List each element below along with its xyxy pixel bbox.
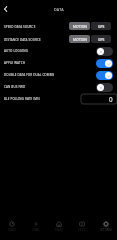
- staticText: DRAG: [32, 228, 40, 232]
- button[interactable]: TRACK: [47, 215, 70, 240]
- staticText: 0: [109, 95, 113, 104]
- button[interactable]: Enabled: [96, 59, 113, 68]
- staticText: CAN BUS FWD: [4, 85, 96, 89]
- button[interactable]: SETTINGS: [94, 215, 117, 240]
- button[interactable]: VIDEO: [70, 215, 93, 240]
- staticText: DIALS: [8, 228, 16, 232]
- button[interactable]: Disabled: [96, 83, 113, 92]
- button[interactable]: SPEED DATA SOURCE: [0, 21, 117, 33]
- button[interactable]: Back: [0, 3, 12, 15]
- staticText: SETTINGS: [100, 228, 112, 232]
- button[interactable]: GPS: [91, 22, 111, 30]
- button[interactable]: DRAG: [24, 215, 47, 240]
- staticText: MOTION: [73, 24, 87, 28]
- button[interactable]: Disabled: [96, 47, 113, 56]
- staticText: AUTO LOGGING: [4, 49, 96, 53]
- button[interactable]: DISTANCE DATA SOURCE: [0, 34, 117, 46]
- staticText: VIDEO: [78, 228, 86, 232]
- staticText: MOTION: [73, 37, 87, 41]
- staticText: SPEED DATA SOURCE: [4, 25, 69, 29]
- button[interactable]: GPS: [91, 35, 111, 43]
- staticText: GPS: [98, 37, 105, 41]
- staticText: DISTANCE DATA SOURCE: [4, 38, 69, 42]
- button[interactable]: BLE POLLING RATE (MS): [0, 93, 117, 105]
- staticText: TRACK: [55, 228, 63, 232]
- staticText: GPS: [98, 24, 105, 28]
- button[interactable]: APPLE WATCH: [0, 57, 117, 69]
- staticText: DOUBLE DATA FOR DUAL COMMS: [4, 73, 96, 77]
- button[interactable]: MOTION: [69, 35, 90, 43]
- button[interactable]: AUTO LOGGING: [0, 45, 117, 57]
- staticText: BLE POLLING RATE (MS): [4, 97, 80, 101]
- button[interactable]: DIALS: [0, 215, 23, 240]
- button[interactable]: DOUBLE DATA FOR DUAL COMMS: [0, 69, 117, 81]
- button[interactable]: Enabled: [96, 71, 113, 80]
- button[interactable]: CAN BUS FWD: [0, 81, 117, 93]
- staticText: APPLE WATCH: [4, 61, 96, 65]
- button[interactable]: MOTION: [69, 22, 90, 30]
- staticText: DATA: [54, 7, 64, 12]
